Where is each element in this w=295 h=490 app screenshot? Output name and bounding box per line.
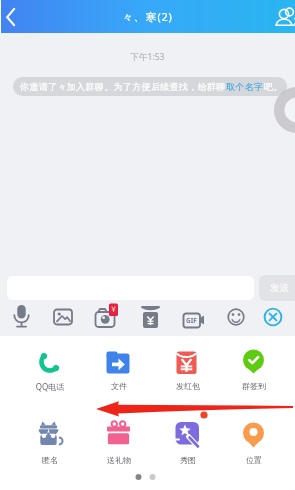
button[interactable] bbox=[94, 417, 144, 469]
button[interactable] bbox=[25, 342, 75, 394]
button[interactable] bbox=[94, 342, 144, 394]
staticText: 匿名 bbox=[20, 455, 80, 465]
button[interactable] bbox=[0, 0, 30, 33]
staticText: 吧。 bbox=[264, 81, 283, 92]
staticText: QQ电话 bbox=[20, 381, 80, 392]
staticText: 群签到 bbox=[224, 381, 284, 391]
button[interactable] bbox=[257, 302, 289, 332]
staticText: 你邀请了々加入群聊。为了方便后续查找，给群聊 bbox=[20, 81, 226, 92]
staticText: 发送 bbox=[270, 282, 289, 294]
staticText: 位置 bbox=[224, 455, 284, 465]
staticText: 々、寒(2) bbox=[122, 9, 173, 24]
button[interactable] bbox=[163, 342, 213, 394]
staticText: 取个名字 bbox=[226, 81, 264, 92]
staticText: 送礼物 bbox=[89, 455, 149, 465]
staticText: 文件 bbox=[89, 381, 149, 391]
button[interactable] bbox=[267, 0, 295, 33]
button[interactable] bbox=[220, 302, 252, 332]
button[interactable] bbox=[6, 302, 38, 332]
button[interactable]: 你邀请了々加入群聊。为了方便后续查找，给群聊 bbox=[13, 77, 287, 96]
button[interactable] bbox=[25, 417, 75, 469]
button[interactable] bbox=[229, 417, 279, 469]
button[interactable] bbox=[163, 417, 213, 469]
button[interactable] bbox=[135, 302, 167, 332]
button[interactable]: 发送 bbox=[259, 275, 295, 301]
staticText: 下午1:53 bbox=[0, 51, 295, 63]
button[interactable] bbox=[177, 302, 209, 332]
staticText: GIF bbox=[186, 316, 197, 325]
button[interactable] bbox=[89, 302, 121, 332]
button[interactable] bbox=[47, 302, 79, 332]
staticText: 发红包 bbox=[158, 381, 218, 391]
staticText: 秀图 bbox=[158, 455, 218, 465]
button[interactable] bbox=[229, 342, 279, 394]
